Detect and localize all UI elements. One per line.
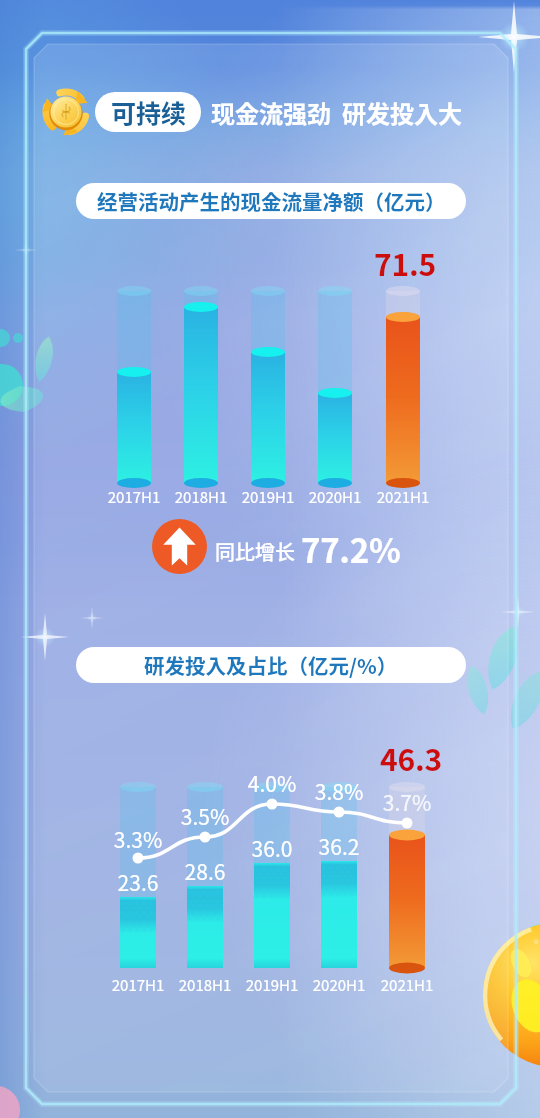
- staticText: 2018H1: [165, 974, 245, 996]
- staticText: 3.5%: [165, 801, 245, 831]
- staticText: 3.3%: [98, 824, 178, 854]
- staticText: 77.2%: [301, 525, 401, 573]
- staticText: 现金流强劲 研发投入大: [211, 95, 462, 130]
- staticText: 3.8%: [299, 776, 379, 806]
- button[interactable]: 经营活动产生的现金流量净额（亿元）: [76, 183, 466, 219]
- staticText: 2021H1: [367, 974, 447, 996]
- staticText: 4.0%: [232, 768, 312, 798]
- button[interactable]: Sustainable: [38, 86, 94, 138]
- staticText: 36.2: [299, 831, 379, 861]
- staticText: 46.3: [380, 736, 443, 779]
- staticText: 36.0: [232, 833, 312, 863]
- button[interactable]: Year on year growth: [152, 519, 207, 574]
- staticText: 2021H1: [363, 486, 443, 508]
- button[interactable]: 可持续: [111, 92, 187, 132]
- staticText: 2019H1: [228, 486, 308, 508]
- staticText: 2017H1: [94, 486, 174, 508]
- staticText: 2018H1: [161, 486, 241, 508]
- staticText: 经营活动产生的现金流量净额（亿元）: [97, 186, 446, 216]
- staticText: 2017H1: [98, 974, 178, 996]
- staticText: 2020H1: [295, 486, 375, 508]
- staticText: 可持续: [111, 94, 187, 130]
- staticText: 研发投入及占比（亿元/%）: [144, 650, 398, 680]
- staticText: 同比增长: [215, 537, 295, 566]
- staticText: 28.6: [165, 856, 245, 886]
- staticText: 2019H1: [232, 974, 312, 996]
- button[interactable]: 研发投入及占比（亿元/%）: [76, 647, 466, 683]
- staticText: 2020H1: [299, 974, 379, 996]
- staticText: 23.6: [98, 867, 178, 897]
- staticText: 3.7%: [367, 787, 447, 817]
- staticText: 71.5: [374, 241, 437, 284]
